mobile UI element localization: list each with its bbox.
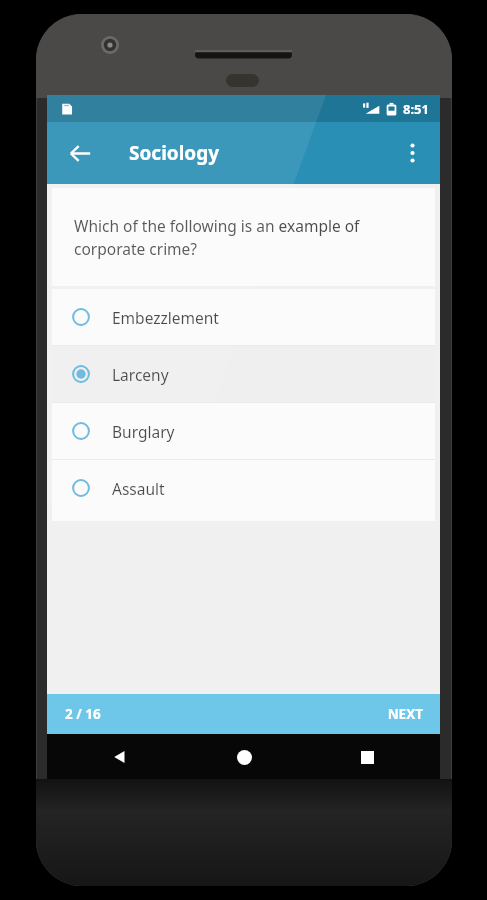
staticText: Sociology [129,140,220,166]
button[interactable]: Assault [52,460,435,516]
button[interactable]: Back [99,736,141,778]
staticText: Embezzlement [112,307,219,328]
staticText: Assault [112,478,165,499]
staticText: Larceny [112,364,169,385]
button[interactable]: Home [223,736,265,778]
button[interactable]: NEXT [370,694,440,734]
staticText: 8:51 [403,100,429,118]
button[interactable]: Back [56,129,104,177]
button[interactable]: More options [390,131,434,175]
button[interactable]: Larceny [52,346,435,402]
staticText: Burglary [112,421,175,442]
staticText: 2 / 16 [65,705,101,723]
button[interactable]: Burglary [52,403,435,459]
button[interactable]: Recents [346,736,388,778]
staticText: Which of the following is an example of … [74,215,411,260]
button[interactable]: Embezzlement [52,289,435,345]
staticText: NEXT [387,705,423,723]
